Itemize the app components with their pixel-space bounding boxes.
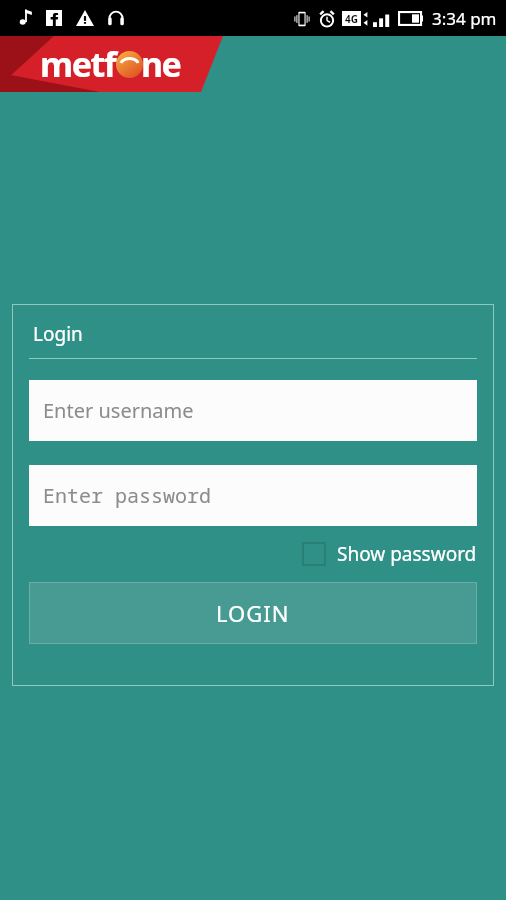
staticText: 3:34 pm	[432, 7, 497, 30]
button[interactable]: Show password	[298, 537, 481, 571]
staticText: metf	[40, 41, 116, 87]
button[interactable]: Enter password	[29, 465, 477, 526]
button[interactable]: Enter username	[29, 380, 477, 441]
staticText: Login	[33, 321, 83, 347]
staticText: 4G	[345, 12, 358, 26]
staticText: Show password	[337, 541, 477, 567]
staticText: Enter username	[43, 397, 194, 424]
staticText: Enter password	[43, 482, 211, 509]
staticText: LOGIN	[216, 598, 290, 628]
staticText: ne	[141, 41, 181, 87]
button[interactable]: LOGIN	[29, 582, 477, 644]
